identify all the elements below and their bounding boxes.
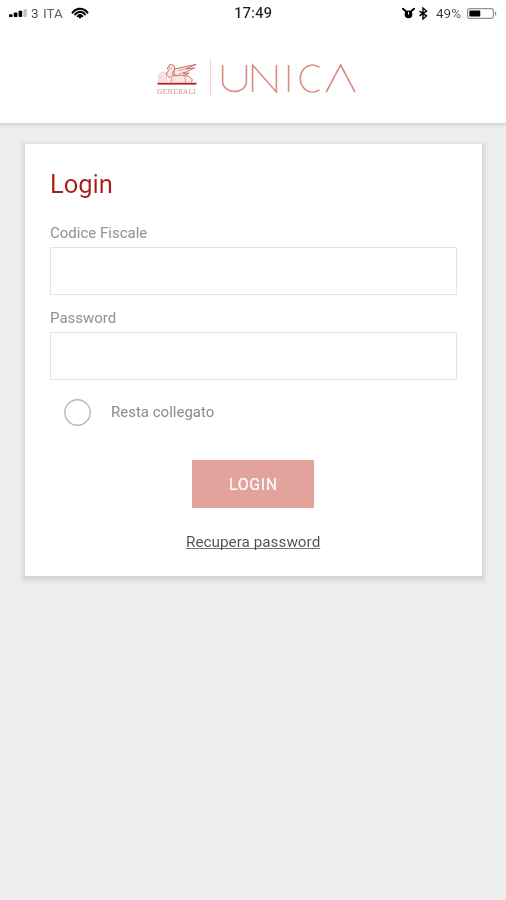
staticText: Password <box>50 309 117 327</box>
button[interactable]: Recupera password <box>174 527 333 557</box>
staticText: Codice Fiscale <box>50 224 148 242</box>
button[interactable]: Resta collegato <box>64 397 215 427</box>
staticText: 3 <box>31 5 39 21</box>
button[interactable]: LOGIN <box>192 460 314 508</box>
staticText: Login <box>50 169 113 199</box>
staticText: 17:49 <box>234 4 273 22</box>
button[interactable]: Password input <box>50 332 457 380</box>
staticText: Recupera password <box>186 533 321 551</box>
staticText: GENERALI <box>157 86 197 96</box>
button[interactable]: Codice Fiscale input <box>50 247 457 295</box>
staticText: Resta collegato <box>111 403 215 421</box>
staticText: 49% <box>436 5 462 21</box>
staticText: ITA <box>43 5 63 21</box>
other: Generali UNICA <box>156 56 292 100</box>
staticText: LOGIN <box>229 475 278 494</box>
